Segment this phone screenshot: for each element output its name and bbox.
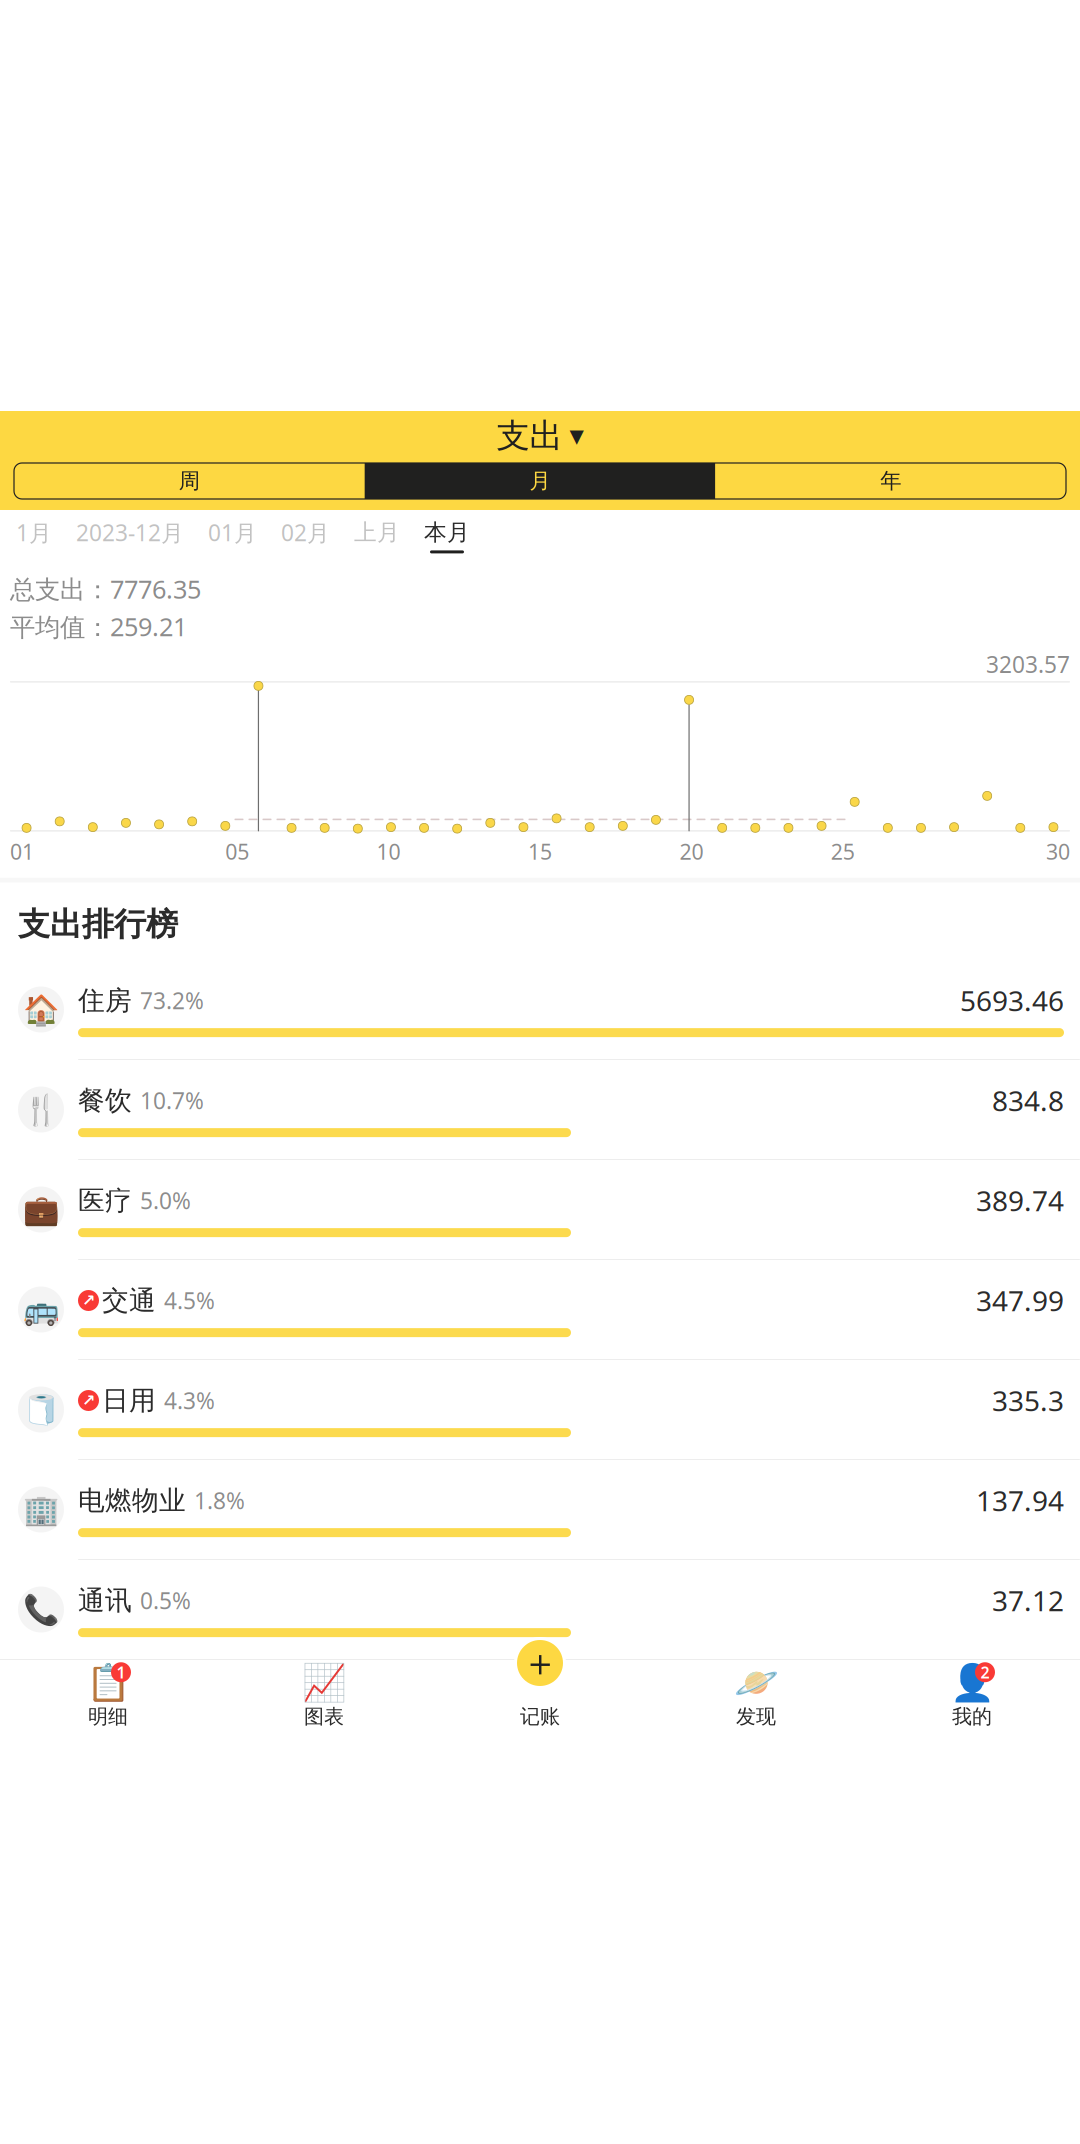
staticText: 🍴 <box>22 1093 59 1126</box>
button[interactable]: 月 <box>365 463 715 499</box>
staticText: 📋 <box>85 1662 130 1703</box>
staticText: 年 <box>880 468 901 494</box>
button[interactable]: 📞 <box>0 1560 1080 1659</box>
staticText: 🏠 <box>22 993 59 1026</box>
staticText: 20 <box>679 837 703 866</box>
staticText: 05 <box>225 837 249 866</box>
staticText: 834.8 <box>992 1082 1064 1119</box>
button[interactable]: 2023-12月 <box>64 510 196 562</box>
staticText: 10 <box>377 837 401 866</box>
staticText: 25 <box>831 837 855 866</box>
staticText: 通讯 <box>78 1584 132 1617</box>
staticText: 2 <box>980 1662 989 1683</box>
button[interactable] <box>432 1666 648 1728</box>
staticText: 37.12 <box>992 1582 1064 1619</box>
staticText: 3203.57 <box>986 649 1070 679</box>
staticText: 5693.46 <box>960 982 1064 1019</box>
button[interactable]: 🏢 <box>0 1460 1080 1560</box>
staticText: 🏢 <box>22 1493 59 1526</box>
button[interactable]: 🏠 <box>0 960 1080 1060</box>
staticText: 月 <box>529 468 550 494</box>
button[interactable]: 🍴 <box>0 1060 1080 1160</box>
staticText: 支出排行榜 <box>18 905 178 944</box>
staticText: 交通 <box>102 1284 156 1317</box>
button[interactable]: 年 <box>715 463 1066 499</box>
staticText: 住房 <box>78 984 132 1017</box>
staticText: 1.8% <box>194 1485 245 1516</box>
staticText: 02月 <box>281 517 330 547</box>
staticText: 10.7% <box>140 1085 204 1116</box>
staticText: 💼 <box>22 1193 59 1226</box>
button[interactable]: 🚌 <box>0 1260 1080 1360</box>
staticText: 餐饮 <box>78 1084 132 1117</box>
staticText: 01 <box>10 837 34 866</box>
staticText: 我的 <box>952 1704 992 1729</box>
staticText: 389.74 <box>976 1182 1064 1219</box>
button[interactable]: 👤 <box>864 1666 1080 1728</box>
staticText: 2023-12月 <box>76 517 184 547</box>
staticText: 🧻 <box>22 1393 59 1426</box>
staticText: 👤 <box>949 1662 994 1703</box>
button[interactable]: 🪐 <box>648 1666 864 1728</box>
button[interactable]: 记账 <box>514 1637 566 1689</box>
staticText: 📞 <box>22 1593 59 1626</box>
staticText: 支出 <box>496 415 562 456</box>
staticText: 平均值：259.21 <box>10 610 187 643</box>
button[interactable]: 📋 <box>0 1666 216 1728</box>
button[interactable]: 01月 <box>196 510 269 562</box>
button[interactable]: 🧻 <box>0 1360 1080 1460</box>
staticText: 医疗 <box>78 1184 132 1217</box>
staticText: 记账 <box>520 1704 560 1729</box>
button[interactable]: 📈 <box>216 1666 432 1728</box>
button[interactable]: 1月 <box>4 510 64 562</box>
staticText: 335.3 <box>992 1382 1064 1419</box>
staticText: 4.5% <box>164 1285 215 1316</box>
button[interactable]: 02月 <box>269 510 342 562</box>
button[interactable]: 本月 <box>412 510 482 562</box>
staticText: 73.2% <box>140 985 204 1016</box>
button[interactable]: 周 <box>14 463 365 499</box>
staticText: 15 <box>528 837 552 866</box>
button[interactable]: 支出 <box>486 417 593 455</box>
staticText: ▼ <box>569 425 583 447</box>
staticText: 日用 <box>102 1384 156 1417</box>
staticText: ↗ <box>82 1391 95 1410</box>
staticText: 📈 <box>301 1662 346 1703</box>
staticText: 🪐 <box>733 1662 778 1703</box>
staticText: 01月 <box>208 517 257 547</box>
staticText: 0.5% <box>140 1585 191 1616</box>
staticText: 总支出：7776.35 <box>10 572 201 606</box>
staticText: 上月 <box>354 519 400 546</box>
staticText: 图表 <box>304 1704 344 1729</box>
staticText: 周 <box>179 468 200 494</box>
staticText: 🚌 <box>22 1293 59 1326</box>
button[interactable]: 💼 <box>0 1160 1080 1260</box>
staticText: 30 <box>1046 837 1070 866</box>
staticText: 本月 <box>424 519 470 546</box>
staticText: 电燃物业 <box>78 1484 186 1517</box>
staticText: 137.94 <box>976 1482 1064 1519</box>
button[interactable]: 上月 <box>342 510 412 562</box>
staticText: 5.0% <box>140 1185 191 1216</box>
staticText: 发现 <box>736 1704 776 1729</box>
staticText: 明细 <box>88 1704 128 1729</box>
staticText: ＋ <box>521 1640 558 1686</box>
staticText: 1月 <box>16 517 52 547</box>
staticText: ↗ <box>82 1291 95 1310</box>
staticText: 1 <box>116 1662 125 1683</box>
staticText: 4.3% <box>164 1385 215 1416</box>
staticText: 347.99 <box>976 1282 1064 1319</box>
staticText <box>535 1658 544 1706</box>
